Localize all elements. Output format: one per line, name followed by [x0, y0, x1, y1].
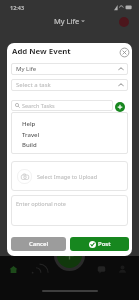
- staticText: 12:43: [10, 4, 25, 11]
- staticText: Travel: [22, 131, 40, 139]
- staticText: Search Tasks: [22, 102, 55, 109]
- staticText: My Life: [54, 16, 80, 26]
- staticText: Post: [98, 240, 111, 248]
- button[interactable]: Enter optional note: [11, 195, 128, 226]
- staticText: My Life: [16, 65, 37, 73]
- staticText: Help: [22, 120, 36, 128]
- staticText: Enter optional note: [16, 200, 66, 207]
- button[interactable]: Travel: [11, 130, 128, 140]
- button[interactable]: Select a task: [11, 79, 128, 91]
- button[interactable]: Chat: [97, 265, 106, 274]
- button[interactable]: Search Tasks: [11, 100, 113, 111]
- button[interactable]: Add task: [115, 102, 125, 112]
- staticText: Build: [22, 141, 37, 149]
- staticText: Select a task: [16, 81, 51, 89]
- button[interactable]: Add event: [57, 243, 82, 268]
- button[interactable]: Help: [11, 119, 128, 129]
- button[interactable]: Build: [11, 140, 128, 150]
- staticText: Add New Event: [12, 46, 71, 57]
- button[interactable]: Post: [70, 237, 129, 251]
- staticText: Cancel: [29, 240, 49, 248]
- button[interactable]: Feed: [31, 265, 40, 274]
- staticText: Select Image to Upload: [37, 173, 98, 180]
- button[interactable]: Select Image to Upload: [11, 161, 128, 191]
- button[interactable]: Profile: [118, 265, 127, 274]
- button[interactable]: Cancel: [11, 237, 66, 251]
- button[interactable]: Profile: [119, 17, 129, 27]
- button[interactable]: Close dialog: [118, 46, 131, 59]
- button[interactable]: Home: [9, 265, 18, 274]
- button[interactable]: My Life: [11, 63, 128, 75]
